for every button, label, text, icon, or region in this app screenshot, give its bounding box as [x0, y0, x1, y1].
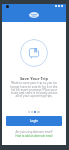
staticText: Want to save your trip so you no longer … — [9, 81, 59, 97]
staticText: Are you using alternate email? — [2, 130, 66, 134]
staticText: Login — [30, 119, 39, 123]
button[interactable]: Login — [6, 116, 62, 126]
button[interactable]: How to add an alternate email — [2, 134, 66, 138]
staticText: How to add an alternate email — [2, 134, 66, 138]
other: Brand logo — [29, 12, 39, 18]
staticText: Save Your Trip — [2, 76, 66, 81]
